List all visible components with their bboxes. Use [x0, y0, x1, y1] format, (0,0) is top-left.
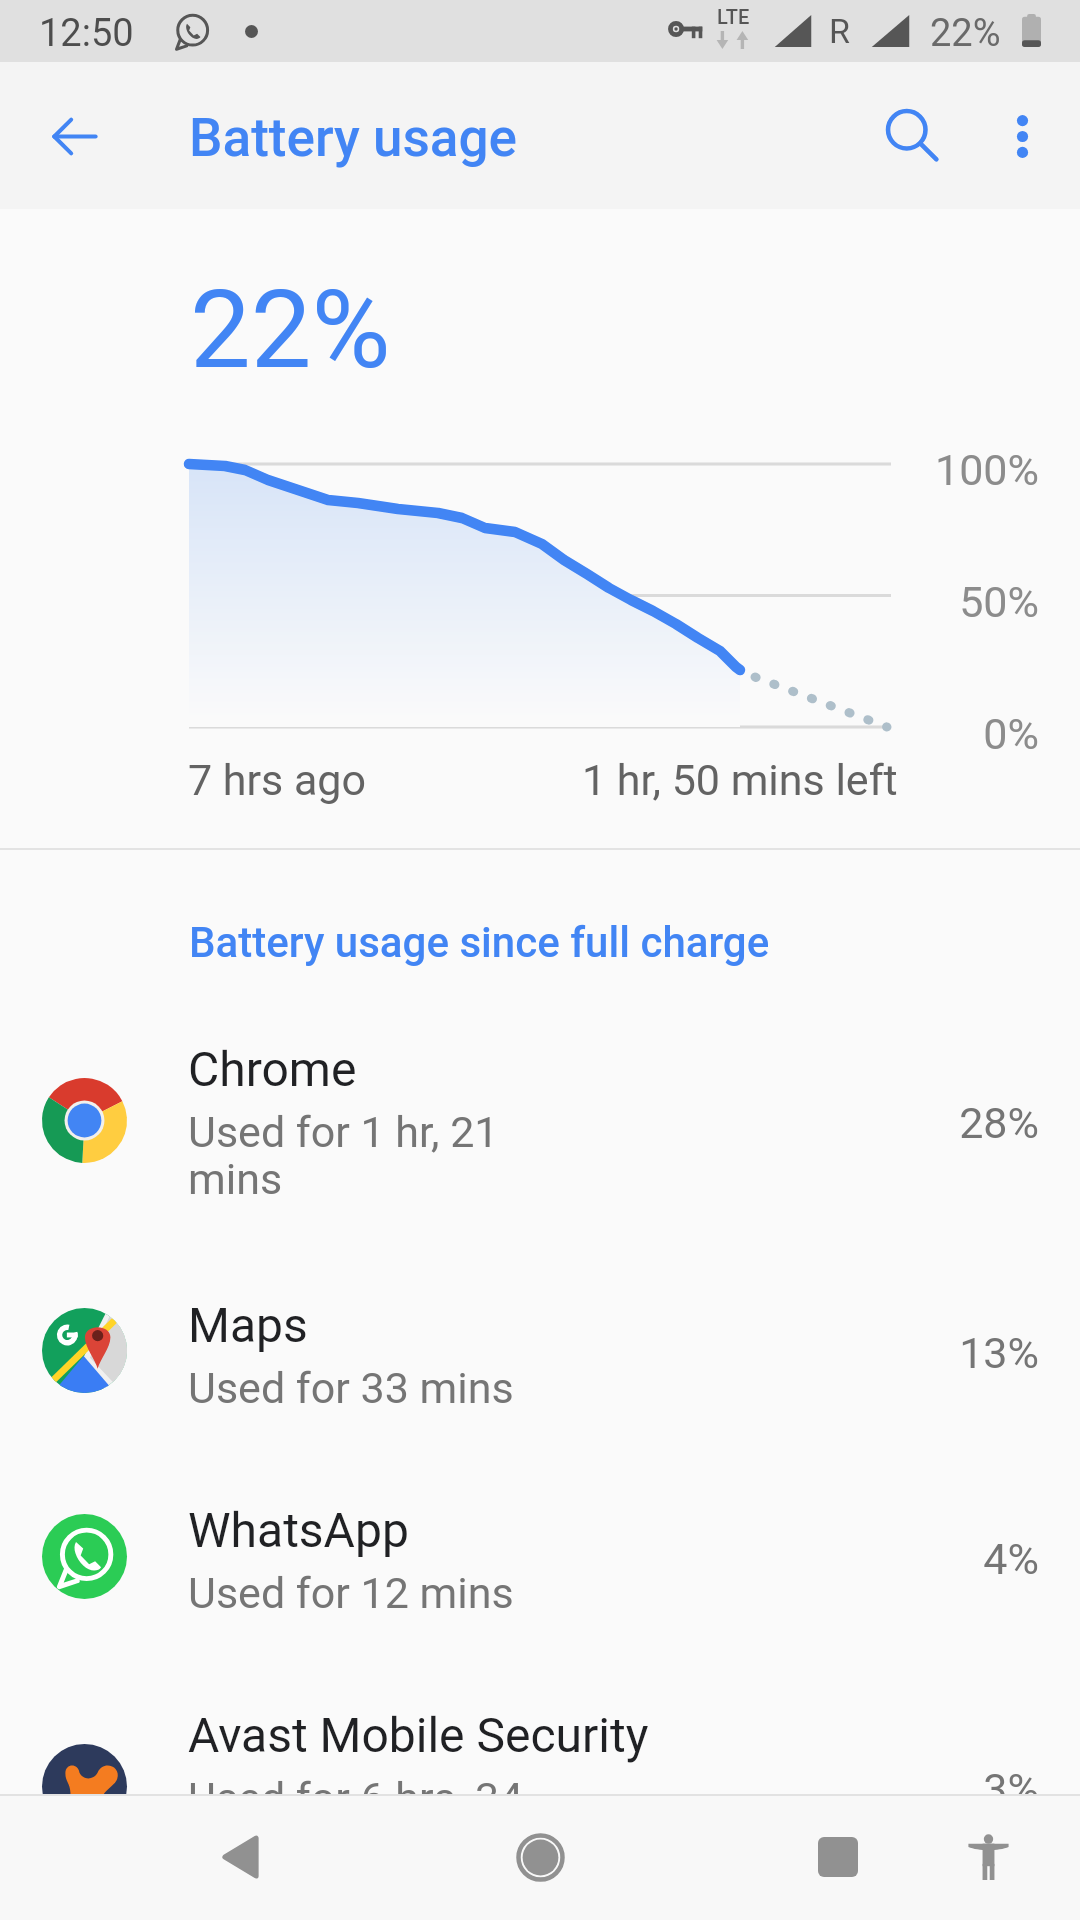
staticText: Maps: [188, 1297, 308, 1353]
button[interactable]: WhatsApp: [0, 1451, 1080, 1656]
button[interactable]: Home: [480, 1797, 600, 1917]
staticText: 28%: [639, 1098, 1039, 1148]
staticText: Used for 33 mins: [188, 1363, 514, 1413]
staticText: 13%: [639, 1328, 1039, 1378]
staticText: Used for 1 hr, 21: [188, 1107, 499, 1157]
staticText: 3%: [639, 1764, 1039, 1814]
button[interactable]: Recent apps: [778, 1797, 898, 1917]
staticText: Chrome: [188, 1041, 357, 1097]
staticText: Battery usage: [189, 107, 518, 169]
staticText: WhatsApp: [188, 1502, 409, 1558]
button[interactable]: More options: [974, 88, 1070, 184]
button[interactable]: Back: [180, 1797, 300, 1917]
staticText: 7 hrs ago: [188, 755, 367, 805]
staticText: Used for 6 hrs, 34: [188, 1773, 524, 1823]
button[interactable]: Maps: [0, 1246, 1080, 1451]
staticText: 22%: [930, 11, 1001, 56]
button[interactable]: Avast Mobile Security: [0, 1656, 1080, 1912]
staticText: R: [829, 11, 850, 51]
staticText: Avast Mobile Security: [188, 1707, 649, 1763]
button[interactable]: Battery usage since full charge: [0, 850, 1080, 990]
staticText: Used for 12 mins: [188, 1568, 514, 1618]
button[interactable]: Chrome: [0, 990, 1080, 1246]
button[interactable]: Back: [27, 89, 121, 183]
staticText: 1 hr, 50 mins left: [582, 755, 898, 805]
staticText: Battery usage since full charge: [189, 918, 770, 967]
button[interactable]: Search: [865, 88, 961, 184]
staticText: mins: [188, 1820, 283, 1870]
staticText: LTE: [717, 5, 750, 28]
staticText: 100%: [639, 445, 1039, 495]
staticText: 4%: [639, 1534, 1039, 1584]
staticText: mins: [188, 1154, 283, 1204]
staticText: 12:50: [39, 11, 134, 56]
staticText: 50%: [639, 577, 1039, 627]
button[interactable]: Accessibility: [928, 1797, 1048, 1917]
staticText: 22%: [190, 267, 391, 394]
staticText: 0%: [639, 709, 1039, 759]
